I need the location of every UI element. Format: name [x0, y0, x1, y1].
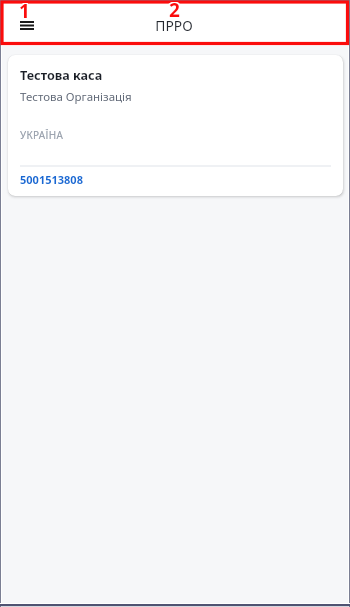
staticText: 1	[20, 0, 31, 24]
staticText: Тестова каса	[20, 67, 103, 84]
staticText: 2	[170, 0, 181, 23]
staticText: 2	[169, 0, 180, 22]
staticText: 2	[168, 0, 179, 22]
staticText: 2	[168, 0, 179, 23]
staticText: 1	[19, 0, 30, 25]
staticText: Тестова Організація	[20, 89, 132, 105]
staticText: 2	[169, 0, 180, 23]
button[interactable]: Open navigation menu	[11, 7, 43, 39]
staticText: 2	[170, 0, 181, 22]
staticText: 1	[18, 0, 29, 23]
staticText: 1	[20, 0, 31, 25]
staticText: 1	[18, 0, 29, 25]
staticText: 5001513808	[20, 172, 83, 187]
staticText: УКРАЇНА	[20, 128, 64, 142]
staticText: 2	[170, 0, 181, 24]
staticText: 2	[169, 0, 180, 24]
staticText: 1	[18, 0, 29, 24]
staticText: ПРРО	[155, 16, 193, 35]
button[interactable]: Тестова каса	[8, 55, 343, 196]
staticText: 1	[19, 0, 30, 23]
button[interactable]: 5001513808	[20, 172, 83, 187]
staticText: 1	[20, 0, 31, 23]
staticText: 1	[19, 0, 30, 24]
staticText: 2	[168, 0, 179, 24]
